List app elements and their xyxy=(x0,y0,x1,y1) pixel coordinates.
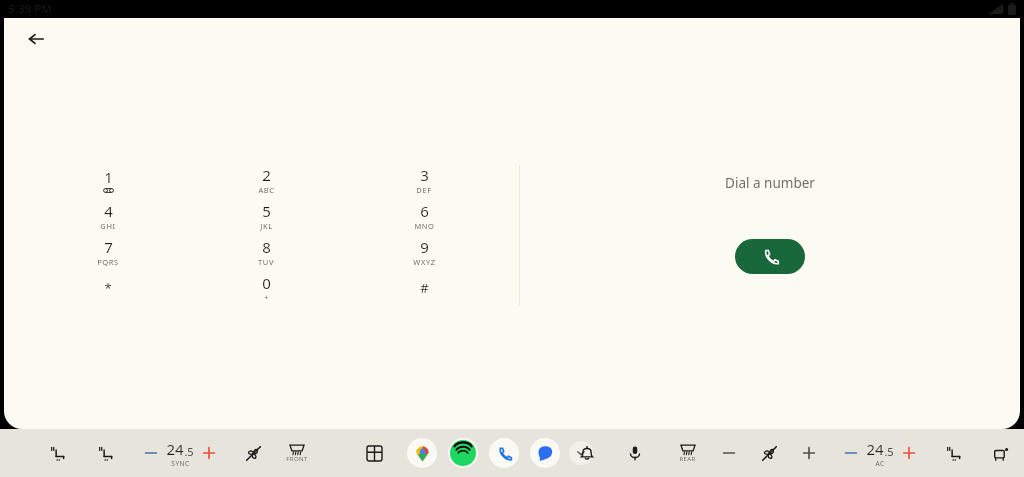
staticText: 4 xyxy=(104,201,113,221)
button[interactable]: 3 xyxy=(388,162,460,198)
staticText: 6 xyxy=(420,201,429,221)
button[interactable]: Increase fan xyxy=(794,438,824,468)
staticText: SYNC xyxy=(171,459,190,468)
staticText: REAR xyxy=(679,455,696,463)
button[interactable]: Maps xyxy=(407,438,437,468)
button[interactable]: Rear defrost xyxy=(672,438,702,468)
button[interactable]: Phone xyxy=(489,438,519,468)
button[interactable]: Passenger seat climate xyxy=(90,438,120,468)
button[interactable]: Decrease temperature xyxy=(136,438,166,468)
button[interactable]: More apps xyxy=(569,441,593,465)
staticText: FRONT xyxy=(286,455,308,463)
button[interactable]: * xyxy=(72,270,144,306)
button[interactable]: 5 xyxy=(230,198,302,234)
staticText: JKL xyxy=(260,221,273,231)
button[interactable]: All apps xyxy=(359,438,389,468)
button[interactable]: Increase AC temperature xyxy=(894,438,924,468)
button[interactable]: 1 xyxy=(72,162,144,198)
staticText: # xyxy=(420,279,429,297)
button[interactable]: Increase temperature xyxy=(194,438,224,468)
button[interactable]: Decrease fan xyxy=(714,438,744,468)
staticText: ABC xyxy=(258,185,275,195)
button[interactable]: Assistant xyxy=(620,438,650,468)
button[interactable]: 8 xyxy=(230,234,302,270)
staticText: 0 xyxy=(262,273,271,293)
button[interactable]: # xyxy=(388,270,460,306)
staticText: 1 xyxy=(104,167,113,187)
staticText: 5:39 PM xyxy=(8,1,52,17)
button[interactable]: Back xyxy=(18,21,54,57)
staticText: + xyxy=(264,293,269,303)
staticText: 5 xyxy=(262,201,271,221)
button[interactable]: 2 xyxy=(230,162,302,198)
button[interactable]: 6 xyxy=(388,198,460,234)
staticText: 24 xyxy=(866,439,884,459)
staticText: 7 xyxy=(104,237,113,257)
staticText: DEF xyxy=(416,185,432,195)
staticText: 9 xyxy=(420,237,429,257)
button[interactable]: Profile xyxy=(986,438,1016,468)
staticText: 8 xyxy=(262,237,271,257)
staticText: Dial a number xyxy=(725,174,815,192)
staticText: WXYZ xyxy=(413,257,436,267)
button[interactable]: Front defrost xyxy=(282,438,312,468)
button[interactable]: 0 xyxy=(230,270,302,306)
button[interactable]: Driver seat climate xyxy=(42,438,72,468)
button[interactable]: Fan off xyxy=(238,438,268,468)
button[interactable]: 4 xyxy=(72,198,144,234)
staticText: AC xyxy=(875,459,885,468)
button[interactable]: Call xyxy=(735,239,805,274)
staticText: 3 xyxy=(420,165,429,185)
button[interactable]: Fan off xyxy=(754,438,784,468)
staticText: MNO xyxy=(414,221,435,231)
button[interactable]: 7 xyxy=(72,234,144,270)
staticText: PQRS xyxy=(97,257,119,267)
staticText: * xyxy=(104,279,112,297)
button[interactable]: Decrease AC temperature xyxy=(836,438,866,468)
button[interactable]: Rear seat climate xyxy=(938,438,968,468)
staticText: .5 xyxy=(184,444,194,459)
button[interactable]: 9 xyxy=(388,234,460,270)
staticText: 24 xyxy=(166,439,184,459)
staticText: TUV xyxy=(258,257,274,267)
staticText: .5 xyxy=(884,444,894,459)
button[interactable]: Messages xyxy=(530,438,560,468)
staticText: 2 xyxy=(262,165,271,185)
staticText: GHI xyxy=(100,221,116,231)
button[interactable]: Spotify xyxy=(448,438,478,468)
button[interactable]: Notifications xyxy=(572,438,602,468)
